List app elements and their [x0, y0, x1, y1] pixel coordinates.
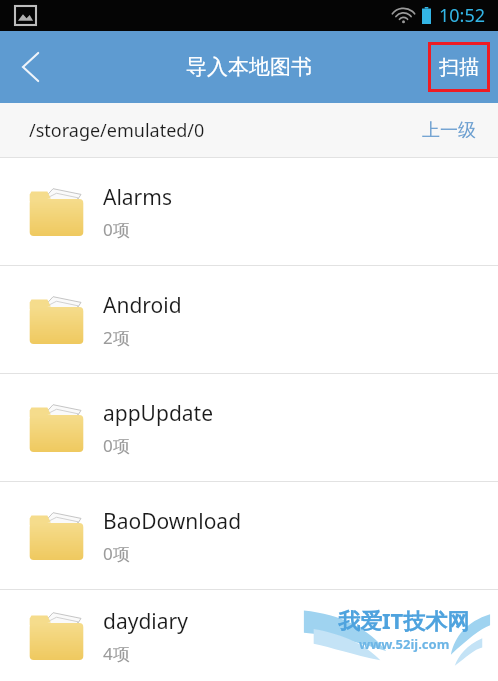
staticText: 10:52 [439, 3, 486, 28]
button[interactable]: Back [0, 31, 62, 103]
button[interactable]: daydiary [0, 590, 498, 681]
button[interactable]: 上一级 [400, 103, 498, 157]
staticText: 4项 [103, 642, 130, 665]
staticText: 我爱IT技术网 [338, 605, 470, 635]
staticText: 0项 [103, 434, 130, 457]
staticText: 0项 [103, 218, 130, 241]
button[interactable]: BaoDownload [0, 482, 498, 589]
button[interactable]: 扫描 [428, 42, 490, 92]
staticText: 2项 [103, 326, 130, 349]
staticText: 0项 [103, 542, 130, 565]
staticText: 扫描 [439, 55, 479, 80]
button[interactable]: Alarms [0, 158, 498, 265]
staticText: 导入本地图书 [0, 54, 498, 80]
staticText: BaoDownload [103, 507, 242, 536]
staticText: www.52ij.com [359, 635, 450, 653]
staticText: Alarms [103, 183, 172, 212]
staticText: appUpdate [103, 399, 213, 428]
button[interactable]: Android [0, 266, 498, 373]
button[interactable]: appUpdate [0, 374, 498, 481]
staticText: daydiary [103, 607, 188, 636]
staticText: /storage/emulated/0 [29, 118, 205, 143]
staticText: Android [103, 291, 182, 320]
staticText: 上一级 [422, 119, 476, 142]
